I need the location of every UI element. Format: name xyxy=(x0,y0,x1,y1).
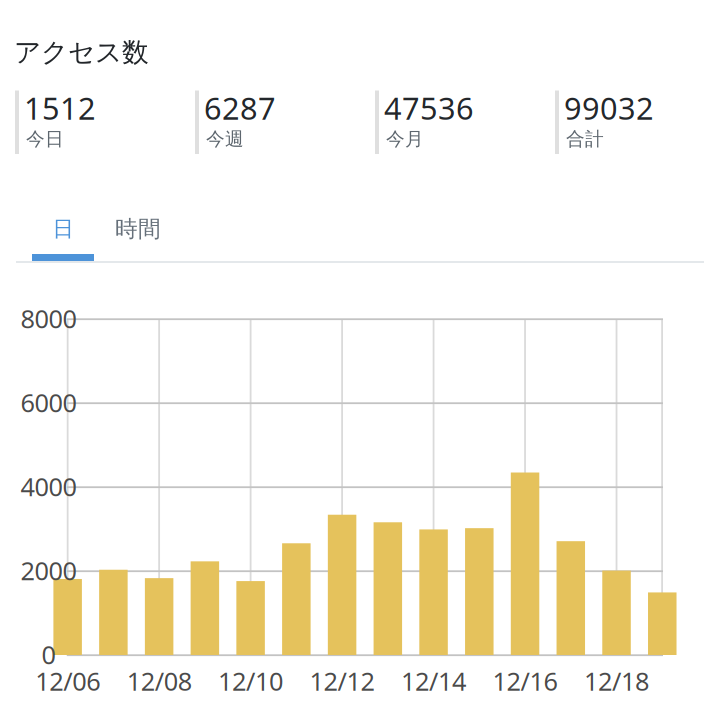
staticText: 12/08 xyxy=(127,664,192,698)
staticText: 6287 xyxy=(204,87,276,128)
staticText: 0 xyxy=(41,638,55,671)
button[interactable]: 日 xyxy=(32,205,94,253)
staticText: 4000 xyxy=(20,470,76,503)
staticText: 12/10 xyxy=(218,664,283,698)
staticText: 時間 xyxy=(115,215,161,243)
staticText: 47536 xyxy=(384,87,474,128)
staticText: 1512 xyxy=(24,87,96,128)
button[interactable]: 47536 xyxy=(375,90,555,154)
staticText: 12/16 xyxy=(493,664,558,698)
staticText: 12/14 xyxy=(401,664,466,698)
button[interactable]: 6287 xyxy=(195,90,375,154)
staticText: アクセス数 xyxy=(14,36,149,69)
staticText: 99032 xyxy=(564,87,654,128)
staticText: 12/12 xyxy=(310,664,375,698)
staticText: 合計 xyxy=(566,127,604,150)
staticText: 日 xyxy=(52,216,73,242)
staticText: 8000 xyxy=(20,302,76,335)
button[interactable]: 時間 xyxy=(94,205,182,253)
staticText: 12/18 xyxy=(584,664,649,698)
staticText: 今月 xyxy=(386,127,424,150)
button[interactable]: 1512 xyxy=(15,90,195,154)
button[interactable]: 99032 xyxy=(555,90,704,154)
staticText: 12/06 xyxy=(35,664,100,698)
staticText: 2000 xyxy=(20,554,76,587)
staticText: 今週 xyxy=(206,127,244,150)
staticText: 6000 xyxy=(20,386,76,419)
staticText: 今日 xyxy=(26,127,64,150)
